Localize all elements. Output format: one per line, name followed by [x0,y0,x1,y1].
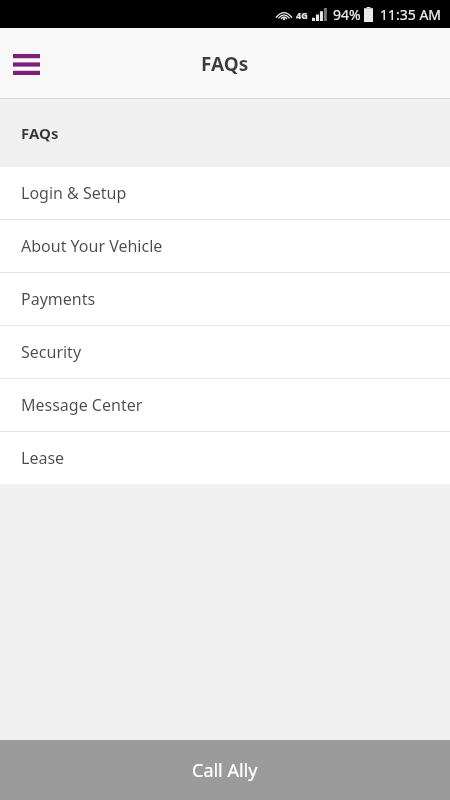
staticText: 94% [333,5,361,24]
staticText: Call Ally [192,758,258,783]
staticText: Security [21,341,82,363]
staticText: 4G [296,9,308,21]
staticText: About Your Vehicle [21,235,163,257]
button[interactable]: Lease [0,432,450,484]
staticText: Payments [21,288,96,310]
staticText: FAQs [201,51,249,77]
button[interactable]: Message Center [0,379,450,431]
button[interactable]: Security [0,326,450,378]
staticText: Message Center [21,394,143,416]
staticText: Lease [21,447,65,469]
staticText: 11:35 AM [380,5,442,24]
staticText: FAQs [21,123,59,143]
button[interactable]: Call Ally [0,740,450,800]
button[interactable]: About Your Vehicle [0,220,450,272]
staticText: Login & Setup [21,182,127,204]
button[interactable]: Login & Setup [0,167,450,219]
button[interactable]: Open navigation menu [0,38,52,90]
button[interactable]: Payments [0,273,450,325]
